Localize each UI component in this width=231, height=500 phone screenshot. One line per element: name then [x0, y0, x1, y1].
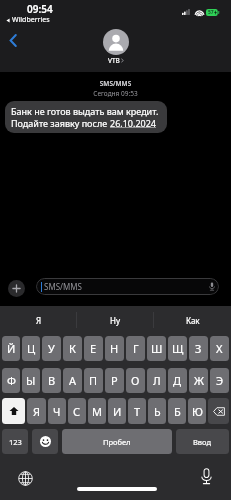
staticText: Щ	[172, 341, 184, 356]
button[interactable]: К	[63, 336, 82, 361]
staticText: Ю	[192, 404, 203, 419]
button[interactable]: Back	[3, 30, 23, 50]
staticText: 57	[208, 9, 214, 16]
staticText: А	[69, 373, 77, 388]
button[interactable]: Л	[147, 368, 166, 393]
button[interactable]: 123	[2, 429, 28, 454]
staticText: Ш	[151, 341, 163, 356]
staticText: Wildberries	[12, 15, 50, 25]
button[interactable]: Э	[210, 368, 229, 393]
button[interactable]: А	[63, 368, 82, 393]
staticText: О	[131, 373, 140, 388]
staticText: Д	[173, 373, 182, 388]
staticText: 26.10.2024	[110, 117, 157, 129]
button[interactable]: Back to Wildberries	[0, 0, 70, 24]
button[interactable]: Б	[168, 398, 186, 424]
staticText: Б	[174, 404, 181, 419]
button[interactable]: Е	[84, 336, 103, 361]
staticText: Н	[110, 341, 119, 356]
button[interactable]: Г	[126, 336, 145, 361]
staticText: Пробел	[103, 437, 131, 447]
staticText: П	[89, 373, 98, 388]
staticText: SMS/MMS	[0, 79, 231, 88]
button[interactable]: Пробел	[62, 429, 172, 454]
button[interactable]: Ж	[189, 368, 208, 393]
button[interactable]: Я	[27, 398, 46, 424]
staticText: Р	[111, 373, 118, 388]
button[interactable]: В	[42, 368, 61, 393]
staticText: Ь	[154, 404, 161, 419]
button[interactable]: Т	[128, 398, 146, 424]
button[interactable]: Ввод	[176, 429, 229, 454]
staticText: Ц	[27, 341, 36, 356]
button[interactable]: Ну	[77, 307, 154, 333]
staticText: SMS/MMS	[44, 281, 82, 292]
button[interactable]: Ш	[147, 336, 166, 361]
staticText: Я	[33, 404, 41, 419]
button[interactable]: Ч	[48, 398, 66, 424]
staticText: Х	[216, 341, 223, 356]
button[interactable]: М	[88, 398, 106, 424]
button[interactable]: Ы	[22, 368, 40, 393]
staticText: Сегодня 09:53	[0, 89, 231, 98]
button[interactable]: П	[84, 368, 103, 393]
staticText: У	[48, 341, 55, 356]
button[interactable]: Ф	[2, 368, 20, 393]
button[interactable]: У	[42, 336, 61, 361]
staticText: З	[195, 341, 202, 356]
staticText: М	[92, 404, 102, 419]
staticText: Й	[7, 341, 16, 356]
staticText: Г	[133, 341, 139, 356]
button[interactable]: Д	[168, 368, 187, 393]
staticText: Ч	[53, 404, 61, 419]
staticText: VTB	[108, 56, 120, 65]
staticText: Т	[134, 404, 141, 419]
button[interactable]: Add attachment	[8, 280, 25, 297]
button[interactable]: С	[68, 398, 86, 424]
button[interactable]: Shift	[2, 398, 25, 424]
button[interactable]: Ь	[148, 398, 166, 424]
button[interactable]: О	[126, 368, 145, 393]
button[interactable]: Р	[105, 368, 124, 393]
button[interactable]: Щ	[168, 336, 187, 361]
staticText: Э	[216, 373, 224, 388]
staticText: Подайте заявку после	[11, 117, 110, 129]
button[interactable]: Ю	[188, 398, 206, 424]
button[interactable]: Я	[0, 307, 77, 333]
button[interactable]: Как	[154, 307, 231, 333]
staticText: Е	[90, 341, 97, 356]
staticText: 09:54	[27, 2, 53, 16]
staticText: Л	[153, 373, 161, 388]
button[interactable]: Х	[210, 336, 229, 361]
staticText: Ну	[110, 315, 121, 326]
staticText: Как	[186, 315, 200, 326]
staticText: Ф	[7, 373, 16, 388]
button[interactable]: З	[189, 336, 208, 361]
staticText: 123	[9, 437, 22, 447]
button[interactable]: Backspace	[208, 398, 229, 424]
button[interactable]: Й	[2, 336, 20, 361]
button[interactable]: Н	[105, 336, 124, 361]
button[interactable]: Ц	[22, 336, 40, 361]
staticText: К	[69, 341, 76, 356]
button[interactable]: Банк не готов выдать вам кредит.	[5, 101, 167, 133]
button[interactable]: VTB	[103, 29, 129, 65]
button[interactable]: Dictation	[196, 466, 216, 486]
button[interactable]: SMS/MMS	[36, 278, 219, 295]
staticText: С	[73, 404, 81, 419]
staticText: Я	[36, 315, 42, 326]
button[interactable]: И	[108, 398, 126, 424]
staticText: Ж	[194, 373, 204, 388]
staticText: В	[48, 373, 56, 388]
staticText: И	[113, 404, 122, 419]
staticText: Банк не готов выдать вам кредит.	[11, 105, 159, 117]
staticText: Ввод	[193, 437, 212, 447]
button[interactable]: Emoji	[32, 429, 58, 454]
button[interactable]: Change keyboard	[15, 468, 35, 488]
staticText: Ы	[26, 373, 36, 388]
